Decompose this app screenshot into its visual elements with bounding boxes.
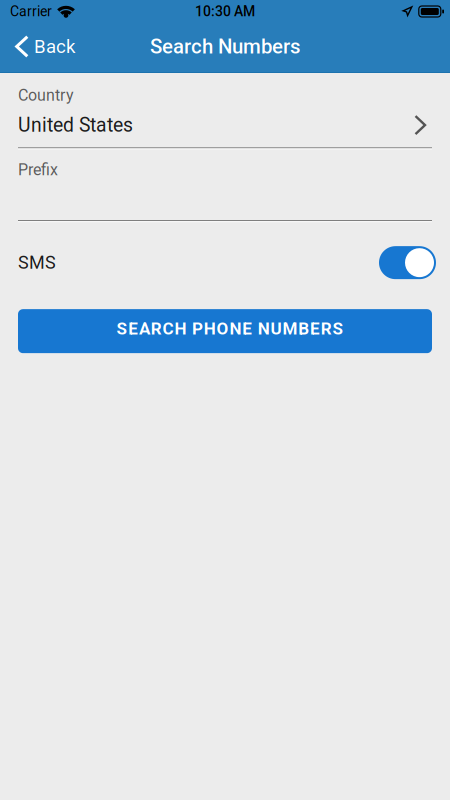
staticText: SEARCH PHONE NUMBERS xyxy=(116,319,344,339)
staticText: 10:30 AM xyxy=(195,3,255,20)
button[interactable]: Prefix xyxy=(18,149,432,222)
staticText: Prefix xyxy=(18,160,58,179)
staticText: SMS xyxy=(18,252,56,273)
staticText: Country xyxy=(18,86,74,105)
button[interactable]: Country xyxy=(18,73,432,149)
button[interactable]: SMS xyxy=(379,246,436,279)
button[interactable]: Back xyxy=(0,24,85,68)
button[interactable]: SEARCH PHONE NUMBERS xyxy=(18,309,432,353)
staticText: United States xyxy=(18,114,133,136)
staticText: Back xyxy=(34,36,75,57)
staticText: Carrier xyxy=(10,3,52,20)
staticText: Search Numbers xyxy=(150,34,300,58)
